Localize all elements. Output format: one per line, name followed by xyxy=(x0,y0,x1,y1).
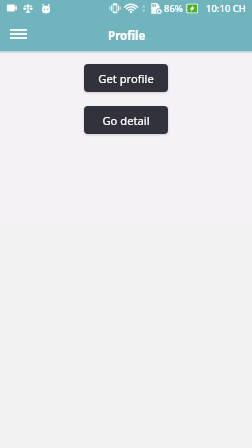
staticText: Profile xyxy=(108,28,146,44)
button[interactable]: Go detail xyxy=(84,106,168,134)
button[interactable]: Get profile xyxy=(84,64,168,92)
staticText: Get profile xyxy=(98,71,154,86)
button[interactable]: Menu xyxy=(2,18,34,50)
staticText: Go detail xyxy=(102,113,150,128)
staticText: 86% xyxy=(164,2,183,15)
staticText: 10:10 CH xyxy=(206,2,246,15)
